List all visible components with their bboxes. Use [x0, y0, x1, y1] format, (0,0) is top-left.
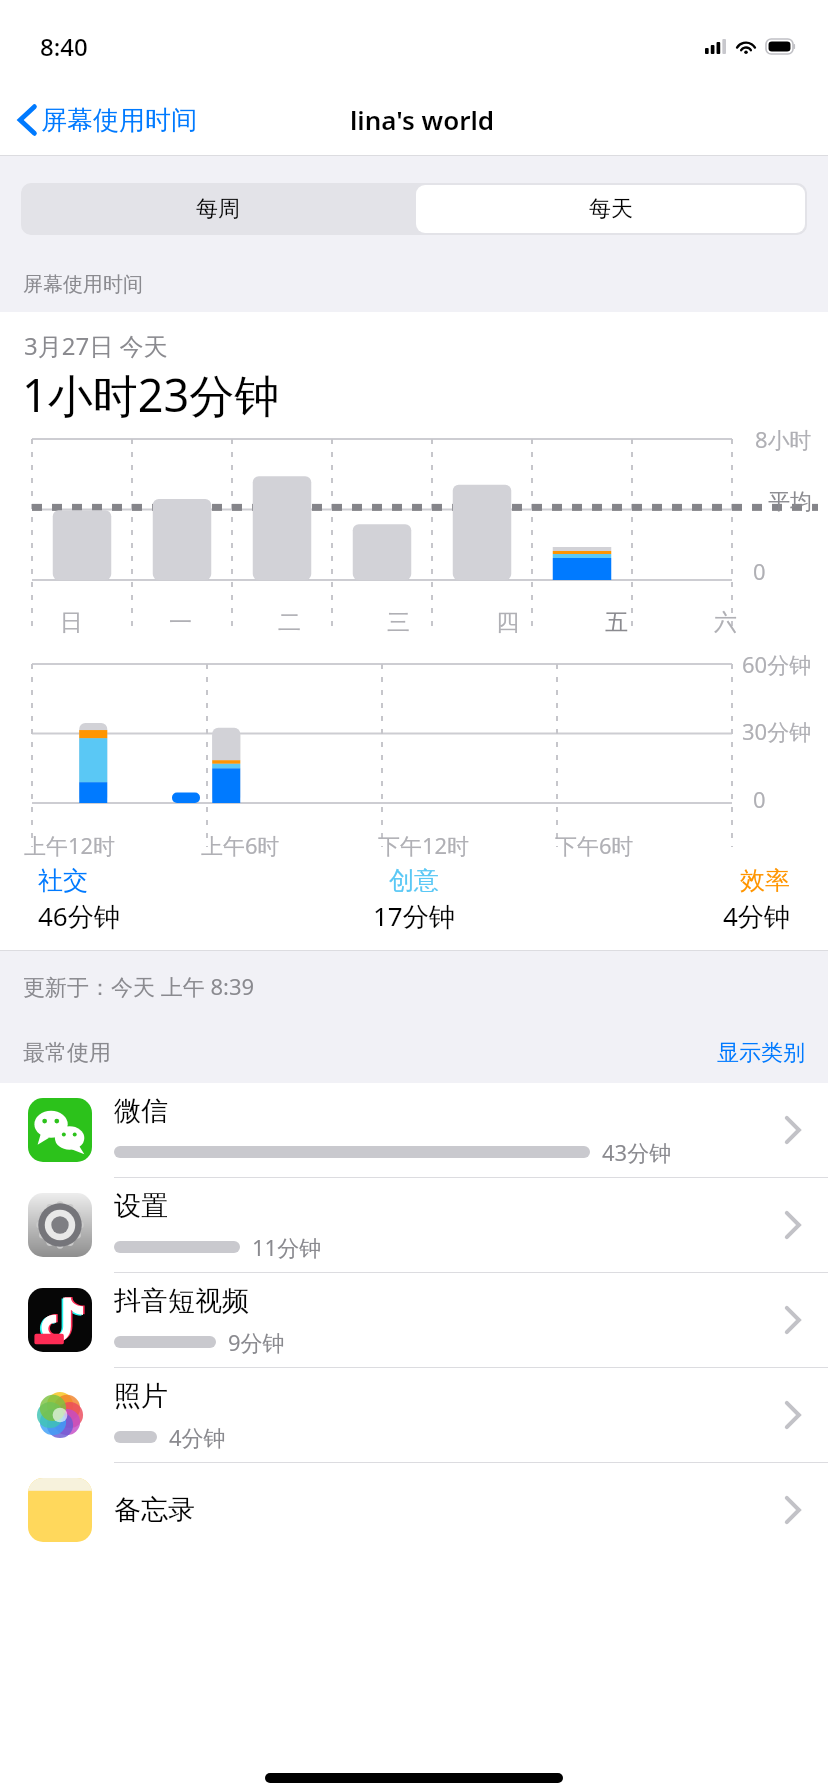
staticText: 0	[753, 556, 766, 586]
staticText: 46分钟	[38, 898, 120, 934]
staticText: 平均	[768, 488, 812, 516]
staticText: 三	[387, 608, 410, 637]
staticText: 日	[60, 608, 83, 637]
staticText: 一	[169, 608, 192, 637]
staticText: 创意	[389, 865, 439, 896]
staticText: 60分钟	[742, 649, 812, 679]
staticText: 0	[753, 784, 766, 814]
staticText: 8:40	[40, 30, 88, 63]
staticText: lina's world	[350, 102, 495, 137]
button[interactable]: 显示类别	[717, 1039, 805, 1067]
staticText: 4分钟	[723, 898, 790, 934]
button[interactable]: 抖音短视频	[0, 1273, 828, 1368]
staticText: 微信	[114, 1094, 168, 1128]
staticText: 四	[496, 608, 519, 637]
staticText: 效率	[740, 865, 790, 896]
staticText: 更新于：今天 上午 8:39	[23, 971, 255, 1001]
staticText: 最常使用	[23, 1039, 111, 1067]
staticText: 每周	[196, 195, 240, 223]
staticText: 1小时23分钟	[22, 364, 280, 425]
staticText: 下午6时	[555, 830, 634, 860]
button[interactable]: 微信	[0, 1083, 828, 1178]
staticText: 每天	[589, 195, 633, 223]
staticText: 六	[714, 608, 737, 637]
button[interactable]: 屏幕使用时间	[16, 102, 205, 138]
staticText: 8小时	[755, 424, 812, 454]
button[interactable]: 设置	[0, 1178, 828, 1273]
staticText: 上午12时	[24, 830, 116, 860]
staticText: 屏幕使用时间	[23, 272, 143, 297]
staticText: 照片	[114, 1379, 168, 1413]
button[interactable]: 效率	[539, 865, 790, 934]
other: 查看 微信 详情	[783, 1114, 802, 1146]
other: 查看 备忘录 详情	[783, 1494, 802, 1526]
staticText: 43分钟	[602, 1137, 672, 1167]
staticText: 设置	[114, 1189, 168, 1223]
button[interactable]: 每天	[416, 185, 805, 233]
staticText: 屏幕使用时间	[41, 104, 197, 137]
staticText: 30分钟	[742, 716, 812, 746]
staticText: 五	[605, 608, 628, 637]
other: 查看 设置 详情	[783, 1209, 802, 1241]
staticText: 备忘录	[114, 1493, 195, 1527]
staticText: 11分钟	[252, 1232, 322, 1262]
staticText: 社交	[38, 865, 88, 896]
button[interactable]: 照片	[0, 1368, 828, 1463]
staticText: 17分钟	[373, 898, 455, 934]
staticText: 3月27日 今天	[24, 329, 168, 362]
button[interactable]: 创意	[288, 865, 539, 934]
staticText: 显示类别	[717, 1039, 805, 1067]
other: 查看 抖音短视频 详情	[783, 1304, 802, 1336]
staticText: 上午6时	[201, 830, 280, 860]
staticText: 4分钟	[169, 1422, 226, 1452]
other: 查看 照片 详情	[783, 1399, 802, 1431]
staticText: 9分钟	[228, 1327, 285, 1357]
button[interactable]: 每周	[21, 183, 414, 235]
staticText: 二	[278, 608, 301, 637]
button[interactable]: 备忘录	[0, 1463, 828, 1557]
button[interactable]: 社交	[38, 865, 288, 934]
staticText: 下午12时	[378, 830, 470, 860]
staticText: 抖音短视频	[114, 1284, 249, 1318]
